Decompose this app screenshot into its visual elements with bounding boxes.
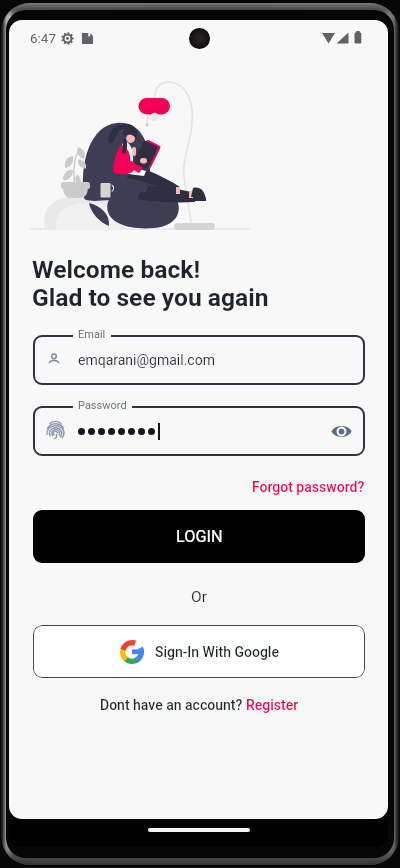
staticText: emqarani@gmail.com: [78, 352, 215, 368]
button[interactable]: emqarani@gmail.com: [33, 335, 365, 385]
staticText: 6:47: [30, 30, 57, 46]
staticText: Register: [246, 697, 299, 713]
staticText: LOGIN: [176, 527, 223, 546]
button[interactable]: Dont have an account?: [100, 697, 299, 713]
staticText: Dont have an account?: [100, 697, 246, 713]
staticText: Password: [78, 399, 127, 412]
button[interactable]: Show password: [33, 406, 365, 456]
staticText: Or: [191, 588, 207, 606]
button[interactable]: LOGIN: [33, 510, 365, 563]
button[interactable]: Sign-In With Google: [33, 625, 365, 678]
staticText: Welcome back! Glad to see you again: [32, 255, 269, 312]
staticText: Email: [78, 328, 106, 341]
button[interactable]: Forgot password?: [252, 479, 365, 495]
button[interactable]: Show password: [331, 424, 352, 439]
staticText: Sign-In With Google: [155, 644, 279, 660]
